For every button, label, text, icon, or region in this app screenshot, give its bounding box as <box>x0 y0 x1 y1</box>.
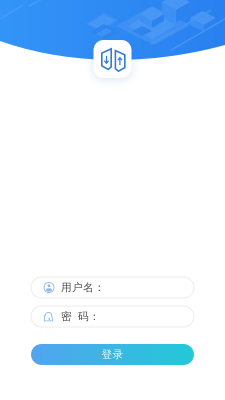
button[interactable]: 用户名： <box>31 277 194 298</box>
staticText: 登录 <box>101 348 123 361</box>
button[interactable]: 密 码： <box>31 306 194 327</box>
staticText: 用户名： <box>61 281 105 294</box>
staticText: 密 码： <box>61 310 100 323</box>
button[interactable]: 登录 <box>31 344 194 365</box>
